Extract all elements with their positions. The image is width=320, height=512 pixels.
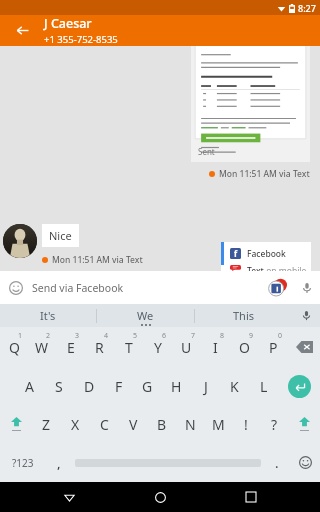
button[interactable]: Home — [138, 482, 182, 512]
staticText: M — [212, 415, 225, 434]
staticText: Y — [154, 338, 162, 357]
staticText: 9 — [249, 331, 254, 341]
button[interactable]: L — [249, 367, 278, 405]
button[interactable]: F — [104, 367, 133, 405]
button[interactable]: D — [74, 367, 104, 405]
button[interactable]: Back — [47, 482, 91, 512]
staticText: 3 — [75, 331, 80, 341]
staticText: ? — [271, 415, 278, 434]
staticText: 1 — [18, 331, 23, 341]
button[interactable]: Sent — [191, 46, 310, 162]
button[interactable]: R — [85, 327, 114, 367]
staticText: C — [100, 415, 109, 434]
button[interactable]: A — [14, 367, 44, 405]
button[interactable]: Backspace — [288, 327, 320, 367]
staticText: Facebook — [247, 248, 286, 260]
button[interactable]: , — [46, 443, 72, 482]
button[interactable]: G — [133, 367, 162, 405]
button[interactable]: Recents — [229, 482, 273, 512]
button[interactable]: Space — [72, 443, 264, 482]
staticText: G — [142, 377, 153, 396]
staticText: This — [233, 308, 255, 323]
button[interactable]: I — [201, 327, 230, 367]
button[interactable]: Z — [32, 405, 61, 443]
staticText: J Caesar — [44, 15, 92, 32]
button[interactable]: O — [230, 327, 259, 367]
button[interactable]: U — [172, 327, 201, 367]
button[interactable]: Text — [221, 265, 311, 271]
staticText: f — [234, 248, 238, 259]
button[interactable]: f — [221, 242, 311, 265]
button[interactable]: Voice input — [294, 271, 320, 304]
button[interactable]: Nice — [42, 224, 79, 247]
button[interactable]: H — [162, 367, 191, 405]
staticText: E — [67, 338, 75, 357]
button[interactable]: This — [195, 304, 292, 327]
button[interactable]: Voice typing — [292, 304, 320, 327]
staticText: Text — [247, 265, 264, 271]
staticText: 8 — [220, 331, 225, 341]
staticText: Mon 11:51 AM via Text — [52, 254, 143, 266]
button[interactable]: ?123 — [0, 443, 46, 482]
button[interactable]: Shift — [288, 405, 320, 443]
staticText: ! — [244, 415, 248, 434]
staticText: 7 — [191, 331, 196, 341]
staticText: R — [95, 338, 104, 357]
button[interactable]: K — [220, 367, 249, 405]
button[interactable]: Shift — [0, 405, 32, 443]
staticText: V — [129, 415, 138, 434]
button[interactable]: C — [90, 405, 119, 443]
staticText: 6 — [162, 331, 167, 341]
staticText: 0 — [278, 331, 283, 341]
staticText: F — [115, 377, 123, 396]
button[interactable]: ? — [260, 405, 288, 443]
staticText: S — [55, 377, 63, 396]
staticText: 2 — [46, 331, 51, 341]
staticText: Nice — [49, 228, 72, 243]
button[interactable]: X — [61, 405, 90, 443]
staticText: K — [230, 377, 239, 396]
button[interactable]: E — [56, 327, 85, 367]
button[interactable]: W — [28, 327, 56, 367]
button[interactable]: Back — [0, 15, 44, 46]
button[interactable]: V — [119, 405, 148, 443]
staticText: W — [35, 338, 49, 357]
staticText: J — [204, 377, 208, 396]
staticText: , — [57, 454, 61, 472]
button[interactable]: S — [44, 367, 74, 405]
staticText: ?123 — [12, 456, 34, 470]
staticText: Send via Facebook — [32, 281, 124, 295]
staticText: N — [185, 415, 196, 434]
button[interactable]: B — [148, 405, 176, 443]
staticText: Sent — [198, 146, 215, 157]
button[interactable]: J — [191, 367, 220, 405]
staticText: 5 — [133, 331, 138, 341]
button[interactable]: P — [259, 327, 288, 367]
staticText: We — [137, 308, 154, 323]
button[interactable]: We — [97, 304, 194, 327]
button[interactable]: Send via Facebook — [32, 271, 260, 304]
staticText: on mobile — [264, 265, 307, 271]
staticText: I — [213, 338, 218, 357]
button[interactable]: Enter — [278, 367, 320, 405]
staticText: B — [157, 415, 167, 434]
button[interactable]: J Caesar — [44, 15, 320, 46]
button[interactable]: N — [176, 405, 204, 443]
button[interactable]: ! — [232, 405, 260, 443]
staticText: 4 — [104, 331, 109, 341]
button[interactable]: Q — [0, 327, 28, 367]
staticText: T — [125, 338, 133, 357]
staticText: Z — [42, 415, 51, 434]
staticText: P — [269, 338, 278, 357]
button[interactable]: Emoji — [0, 271, 32, 304]
button[interactable]: Y — [143, 327, 172, 367]
staticText: It's — [40, 308, 56, 323]
staticText: X — [71, 415, 80, 434]
button[interactable]: It's — [0, 304, 96, 327]
button[interactable]: Send via Facebook — [260, 271, 294, 304]
button[interactable]: T — [114, 327, 143, 367]
button[interactable]: M — [204, 405, 232, 443]
button[interactable]: . — [264, 443, 290, 482]
button[interactable]: Emoji — [290, 443, 320, 482]
staticText: Mon 11:51 AM via Text — [219, 168, 310, 180]
